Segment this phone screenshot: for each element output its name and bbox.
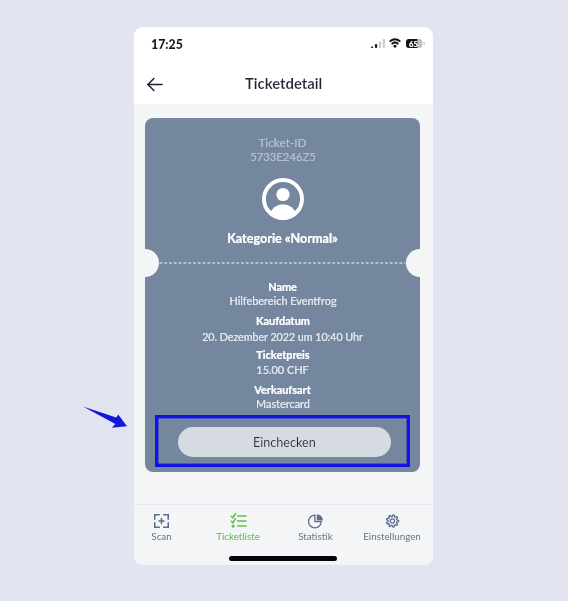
button[interactable]: Back: [136, 66, 172, 102]
staticText: Name: [268, 280, 297, 293]
staticText: Ticket-ID: [258, 135, 307, 149]
button[interactable]: Ticketliste: [205, 507, 271, 547]
staticText: 15.00 CHF: [256, 363, 309, 376]
staticText: Verkaufsart: [254, 383, 311, 396]
staticText: 17:25: [151, 37, 183, 52]
staticText: Kaufdatum: [256, 314, 310, 327]
button[interactable]: Scan: [134, 507, 194, 547]
staticText: Mastercard: [256, 397, 310, 410]
button[interactable]: Statistik: [282, 507, 348, 547]
staticText: 5733E246Z5: [250, 150, 316, 164]
staticText: Scan: [151, 530, 172, 542]
staticText: Ticketliste: [216, 530, 260, 542]
staticText: Ticketpreis: [256, 348, 310, 361]
staticText: Einstellungen: [363, 530, 421, 542]
staticText: Einchecken: [253, 435, 316, 450]
button[interactable]: Einchecken: [178, 427, 391, 457]
staticText: 20. Dezember 2022 um 10:40 Uhr: [202, 330, 363, 343]
staticText: Kategorie «Normal»: [227, 231, 338, 246]
staticText: Ticketdetail: [245, 74, 323, 92]
staticText: Statistik: [298, 530, 333, 542]
staticText: 65: [409, 39, 418, 48]
staticText: Hilfebereich Eventfrog: [229, 294, 337, 307]
button[interactable]: Einstellungen: [359, 507, 425, 547]
